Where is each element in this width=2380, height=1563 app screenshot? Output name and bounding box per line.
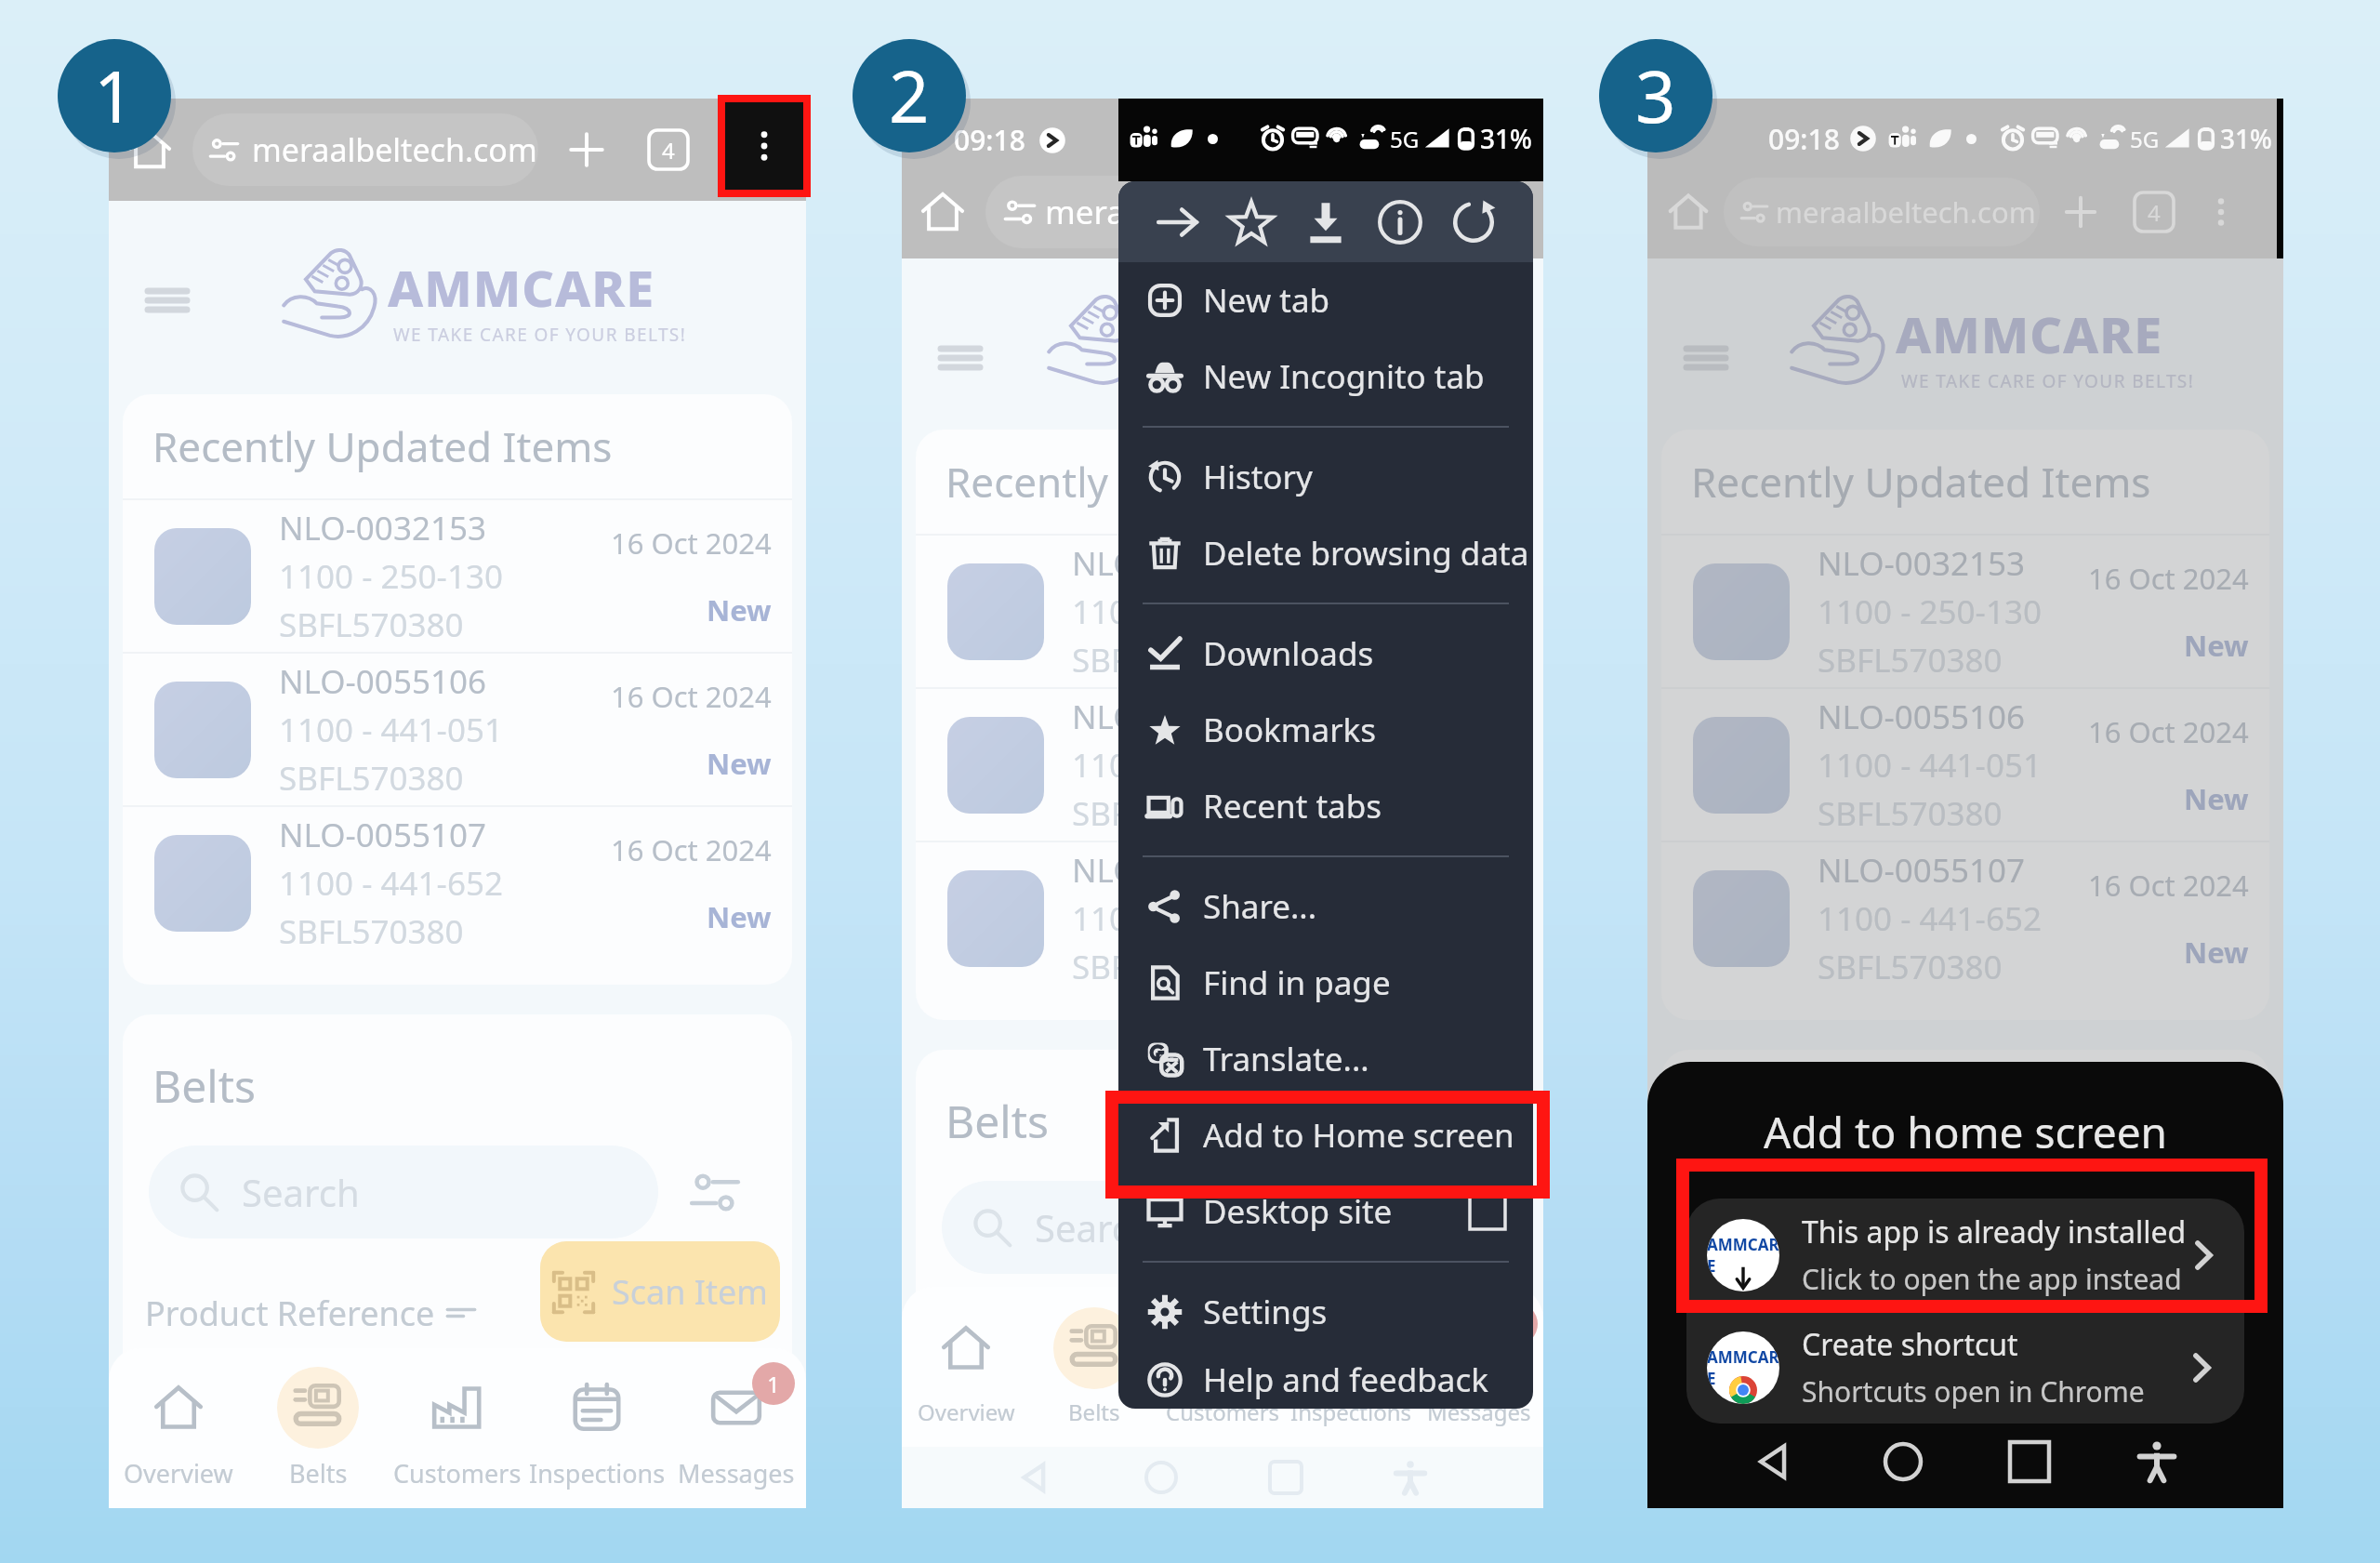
staticText: New [2184, 779, 2249, 818]
staticText: Overview [1662, 1397, 1760, 1427]
staticText: meraa [1045, 190, 1144, 234]
button[interactable]: AMMCARE [1686, 1311, 2244, 1424]
button[interactable]: NLO-0032153 [1661, 536, 2269, 687]
button[interactable]: Overview [902, 1287, 1030, 1447]
button[interactable]: 1 [1415, 1287, 1543, 1447]
button[interactable]: meraalbeltech.com [192, 113, 538, 186]
button[interactable]: Settings [1118, 1274, 1533, 1350]
button[interactable]: Home [1887, 1460, 1923, 1495]
button[interactable]: Forward [1154, 198, 1202, 246]
button[interactable]: NLO-0055107 [123, 807, 792, 959]
staticText: SBFL570380 [1072, 638, 1257, 682]
staticText: WE TAKE CARE OF YOUR BELTS! [393, 323, 687, 347]
staticText: Translate... [1203, 1037, 1369, 1081]
button[interactable]: Overview [109, 1348, 248, 1508]
button[interactable]: Scan Item [540, 1241, 780, 1342]
button[interactable]: NLO-0032153 [916, 536, 1529, 687]
staticText: New [707, 744, 772, 783]
button[interactable]: Desktop site [1118, 1173, 1533, 1250]
button[interactable]: Download [1302, 198, 1350, 246]
staticText: Bookmarks [1203, 708, 1377, 752]
staticText: meraalbeltech.com [252, 128, 537, 171]
staticText: Find in page [1203, 960, 1391, 1005]
button[interactable]: Inspections [1287, 1287, 1415, 1447]
button[interactable]: Reload [1449, 198, 1498, 246]
button[interactable]: Downloads [1118, 616, 1533, 692]
button[interactable]: AMMCARE [1686, 1199, 2244, 1311]
button[interactable]: Find in page [1118, 945, 1533, 1021]
button[interactable]: Share... [1118, 868, 1533, 945]
button[interactable]: 1 [2156, 1287, 2283, 1447]
button[interactable]: Delete browsing data [1118, 515, 1533, 591]
staticText: 31% [1480, 121, 1532, 156]
button[interactable]: NLO-0055107 [916, 842, 1529, 994]
button[interactable]: Page info [1376, 198, 1424, 246]
button[interactable]: Accessibility [2135, 1440, 2178, 1483]
button[interactable]: Inspections [2029, 1287, 2156, 1447]
button[interactable]: Filter [690, 1167, 740, 1217]
button[interactable]: Accessibility [2134, 1460, 2169, 1495]
button[interactable]: New Incognito tab [1118, 338, 1533, 415]
button[interactable]: Belts [1774, 1287, 1901, 1447]
button[interactable]: Recent tabs [1118, 768, 1533, 844]
button[interactable]: Tabs [648, 129, 689, 170]
button[interactable]: Customers [1901, 1287, 2029, 1447]
button[interactable]: History [1118, 439, 1533, 515]
button[interactable]: Filter [1483, 1202, 1529, 1252]
button[interactable]: Filter [2228, 1202, 2269, 1252]
button[interactable]: NLO-0055106 [916, 689, 1529, 841]
staticText: Customers [1166, 1397, 1280, 1427]
button[interactable]: Home [1144, 1460, 1179, 1495]
staticText: Click to open the app instead [1802, 1260, 2182, 1298]
staticText: SBFL570380 [279, 756, 464, 801]
staticText: NLO-0032153 [279, 506, 486, 550]
button[interactable]: Accessibility [1393, 1460, 1428, 1495]
button[interactable]: Bookmark [1227, 198, 1276, 246]
button[interactable]: NLO-0055106 [123, 654, 792, 805]
button[interactable]: Translate... [1118, 1021, 1533, 1097]
staticText: Product Reference [145, 1291, 435, 1336]
button[interactable]: Help and feedback [1118, 1350, 1533, 1409]
button[interactable]: Home [127, 127, 172, 172]
button[interactable]: New tab [566, 129, 607, 170]
button[interactable]: Home [920, 190, 965, 234]
button[interactable]: Belts [248, 1348, 388, 1508]
button[interactable]: Overview [1647, 1287, 1774, 1447]
button[interactable]: Search [1687, 1181, 2197, 1274]
button[interactable]: Back [1017, 1460, 1052, 1495]
staticText: New [707, 590, 772, 629]
button[interactable]: Recents [2010, 1442, 2049, 1481]
staticText: 16 Oct 2024 [611, 677, 772, 716]
staticText: Downloads [1203, 631, 1374, 676]
button[interactable]: Home [1882, 1440, 1924, 1483]
button[interactable]: NLO-0055107 [1661, 842, 2269, 994]
button[interactable]: Menu [937, 335, 984, 381]
button[interactable]: Menu [1683, 335, 1729, 381]
button[interactable]: Menu [144, 277, 191, 324]
button[interactable]: More options [725, 102, 803, 190]
staticText: 1100 - 441-051 [1072, 743, 1296, 788]
button[interactable]: NLO-0032153 [123, 500, 792, 652]
button[interactable]: NLO-0055106 [1661, 689, 2269, 841]
button[interactable]: Customers [388, 1348, 527, 1508]
button[interactable]: Bookmarks [1118, 692, 1533, 768]
button[interactable]: Inspections [527, 1348, 667, 1508]
button[interactable]: Belts [1030, 1287, 1158, 1447]
button[interactable]: Recents [1270, 1462, 1302, 1493]
button[interactable]: Add to Home screen [1118, 1097, 1533, 1173]
button[interactable]: Back [1762, 1460, 1797, 1495]
staticText: AMMCARE [1896, 299, 2163, 368]
button[interactable]: Recents [2012, 1462, 2043, 1493]
button[interactable]: Search [149, 1146, 658, 1238]
staticText: WE TAKE CARE OF YOUR BELTS! [1158, 369, 1452, 393]
button[interactable]: 1 [667, 1348, 806, 1508]
staticText: 4 [662, 135, 675, 166]
staticText: NLO-0055107 [1818, 848, 2025, 893]
button[interactable]: Search [942, 1181, 1451, 1274]
staticText: SBFL570380 [1072, 791, 1257, 836]
button[interactable]: Back [1752, 1440, 1795, 1483]
button[interactable]: Customers [1158, 1287, 1287, 1447]
button[interactable]: New tab [1118, 262, 1533, 338]
staticText: 2 [889, 47, 930, 144]
